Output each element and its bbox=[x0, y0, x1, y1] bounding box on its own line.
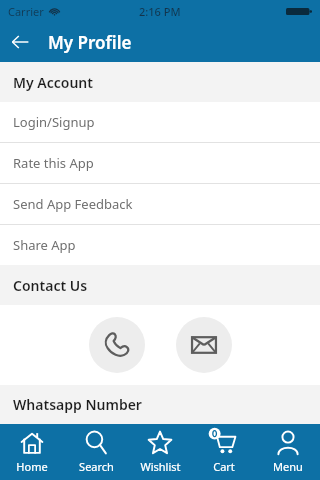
button[interactable]: Call bbox=[89, 317, 145, 373]
button[interactable]: Share App bbox=[0, 225, 320, 265]
staticText: Contact Us bbox=[13, 276, 88, 295]
button[interactable]: Home bbox=[0, 424, 64, 480]
button[interactable]: Send App Feedback bbox=[0, 184, 320, 224]
staticText: Carrier bbox=[8, 4, 44, 19]
button[interactable]: Menu bbox=[256, 424, 320, 480]
staticText: Share App bbox=[13, 236, 76, 254]
staticText: Login/Signup bbox=[13, 113, 95, 131]
staticText: My Profile bbox=[48, 31, 132, 54]
staticText: My Account bbox=[13, 73, 93, 92]
button[interactable]: Email bbox=[176, 317, 232, 373]
button[interactable]: Search bbox=[64, 424, 128, 480]
staticText: Menu bbox=[273, 459, 303, 474]
staticText: Home bbox=[16, 459, 48, 474]
button[interactable]: Rate this App bbox=[0, 143, 320, 183]
staticText: Whatsapp Number bbox=[13, 395, 142, 414]
staticText: Cart bbox=[213, 459, 235, 474]
staticText: Rate this App bbox=[13, 154, 94, 172]
button[interactable]: Login/Signup bbox=[0, 102, 320, 142]
staticText: Send App Feedback bbox=[13, 195, 133, 213]
staticText: Wishlist bbox=[140, 459, 181, 474]
staticText: Search bbox=[79, 459, 114, 474]
staticText: 2:16 PM bbox=[139, 4, 181, 19]
button[interactable]: Back bbox=[0, 22, 40, 62]
button[interactable]: Wishlist bbox=[128, 424, 192, 480]
button[interactable]: Cart bbox=[192, 424, 256, 480]
